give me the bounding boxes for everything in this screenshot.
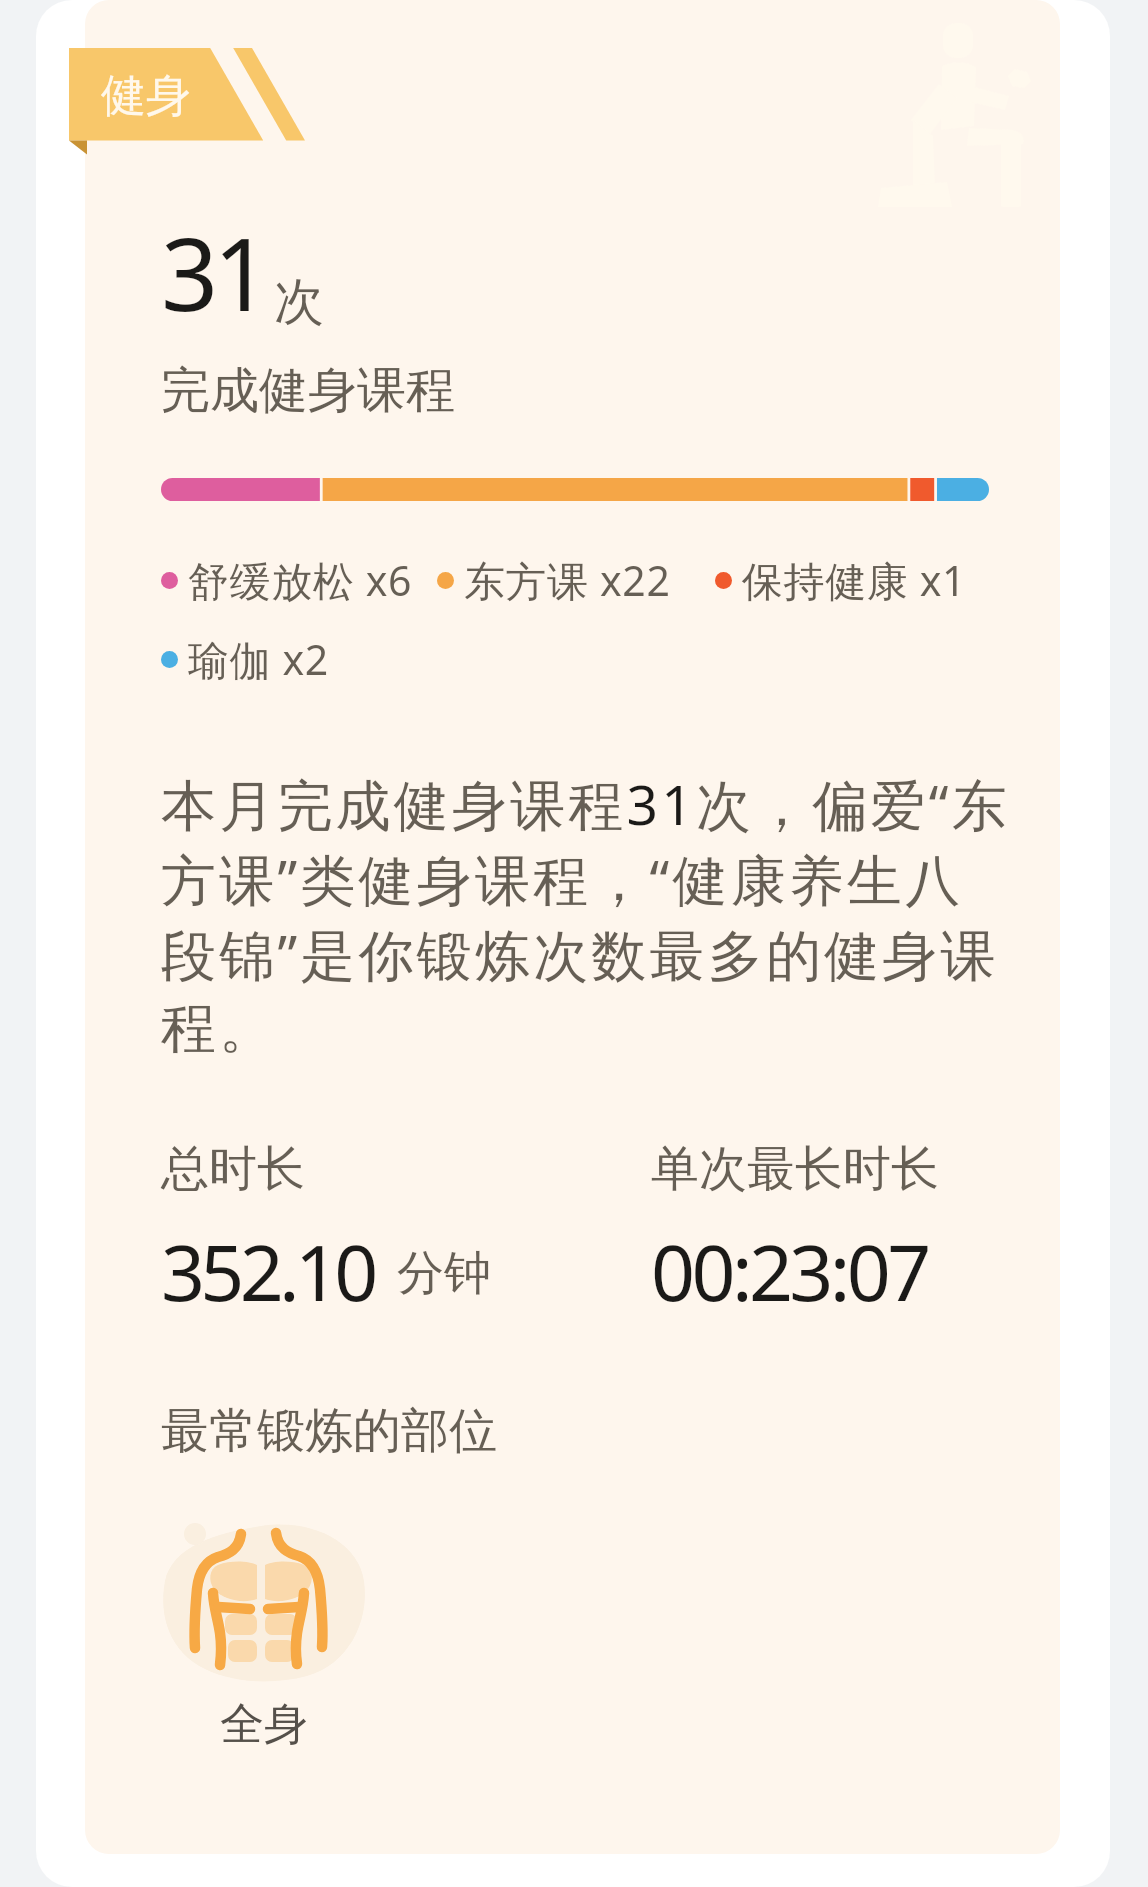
staticText: 00:23:07 <box>651 1219 928 1324</box>
staticText: 352.10 <box>161 1219 374 1324</box>
staticText: 次 <box>274 271 324 334</box>
button[interactable]: Fitness <box>36 0 1110 1887</box>
button[interactable]: 舒缓放松 x6 <box>161 552 413 608</box>
button[interactable]: 瑜伽 x2 <box>161 631 329 687</box>
staticText: 全身 <box>220 1697 308 1752</box>
staticText: 31 <box>161 204 266 340</box>
staticText: 东方课 x22 <box>464 552 671 608</box>
staticText: 完成健身课程 <box>161 360 455 422</box>
staticText: 本月完成健身课程31次，偏爱“东 方课”类健身课程，“健康养生八 段锦”是你锻炼… <box>161 768 1060 1065</box>
staticText: 分钟 <box>397 1244 491 1303</box>
staticText: 总时长 <box>161 1139 305 1199</box>
staticText: 健身 <box>101 68 191 125</box>
staticText: 单次最长时长 <box>651 1139 939 1199</box>
button[interactable]: 东方课 x22 <box>437 552 671 608</box>
staticText: 舒缓放松 x6 <box>188 552 413 608</box>
staticText: 瑜伽 x2 <box>188 631 329 687</box>
staticText: 保持健康 x1 <box>742 552 967 608</box>
button[interactable]: 健身 <box>69 48 309 156</box>
staticText: 最常锻炼的部位 <box>161 1401 497 1461</box>
button[interactable]: 全身 <box>161 1523 366 1752</box>
button[interactable]: 保持健康 x1 <box>715 552 967 608</box>
